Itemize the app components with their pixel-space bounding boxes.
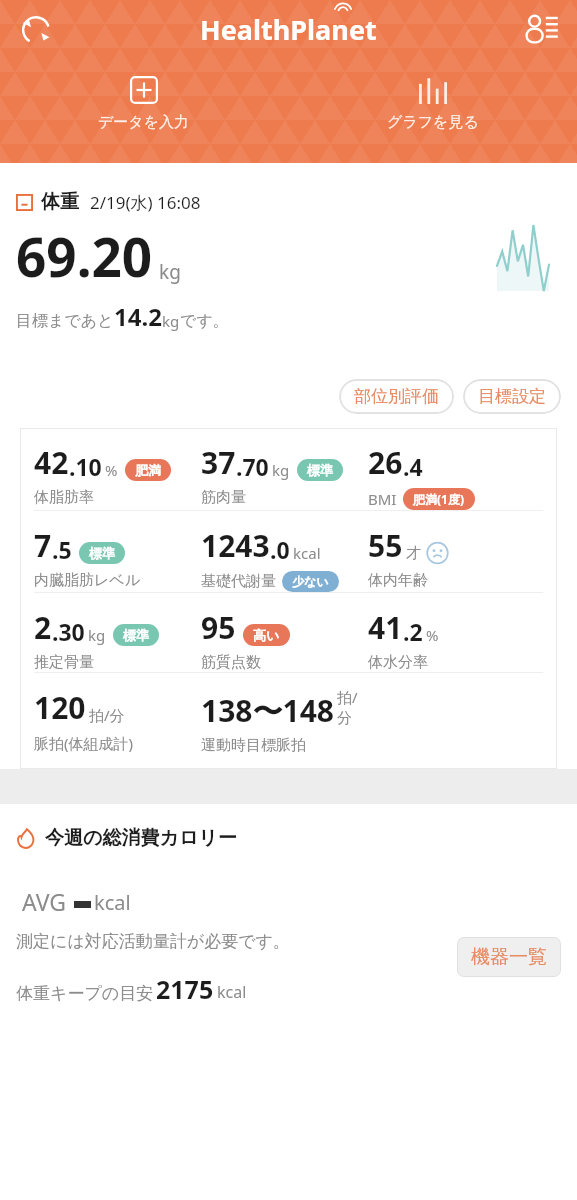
staticText: kg (272, 460, 290, 480)
staticText: グラフを見る (387, 113, 479, 132)
button[interactable]: 7 (34, 525, 141, 590)
button[interactable]: 120 (34, 687, 134, 753)
staticText: 目標設定 (478, 386, 546, 407)
button[interactable]: 26 (368, 442, 475, 510)
button[interactable]: 目標設定 (463, 379, 561, 414)
staticText: 37 (201, 442, 236, 483)
staticText: 標準 (123, 627, 149, 643)
button[interactable]: 機器一覧 (457, 937, 561, 977)
staticText: AVG (22, 886, 67, 917)
staticText: 拍/分 (337, 687, 368, 728)
staticText: 体脂肪率 (34, 488, 94, 507)
staticText: .70 (236, 451, 269, 482)
staticText: kg (159, 259, 181, 285)
staticText: 標準 (307, 462, 333, 478)
staticText: 体重 (41, 190, 79, 214)
button[interactable]: 138〜148 (201, 687, 368, 755)
staticText: kg (88, 625, 106, 645)
staticText: データを入力 (98, 113, 190, 132)
staticText: 少ない (292, 574, 329, 589)
staticText: .2 (403, 616, 423, 647)
button[interactable]: 95 (201, 607, 290, 672)
staticText: 運動時目標脈拍 (201, 736, 306, 755)
staticText: 体水分率 (368, 653, 428, 672)
button[interactable]: 42 (34, 442, 171, 507)
staticText: 機器一覧 (471, 945, 547, 969)
staticText: 目標まであと (16, 311, 114, 331)
staticText: 基礎代謝量 (201, 572, 276, 591)
staticText: 体重キープの目安 (16, 983, 154, 1004)
staticText: 標準 (89, 545, 115, 561)
staticText: BMI (368, 489, 397, 509)
staticText: kg (162, 311, 180, 331)
button[interactable]: 37 (201, 442, 343, 507)
button[interactable]: データを入力 (0, 72, 288, 136)
staticText: 部位別評価 (354, 386, 439, 407)
staticText: HealthPlan (200, 11, 349, 48)
staticText: 2175 (156, 972, 214, 1006)
staticText: 推定骨量 (34, 653, 94, 672)
staticText: % (426, 625, 439, 645)
staticText: 筋質点数 (201, 653, 261, 672)
staticText: .5 (52, 534, 72, 565)
staticText: kcal (293, 543, 321, 563)
staticText: kcal (217, 981, 247, 1003)
staticText: 2/19(水) 16:08 (90, 191, 201, 214)
staticText: kcal (94, 889, 131, 916)
button[interactable]: 部位別評価 (339, 379, 454, 414)
staticText: 高い (253, 627, 280, 643)
button[interactable]: Profile (517, 6, 565, 54)
staticText: et (349, 11, 377, 48)
staticText: 1243 (201, 525, 270, 566)
staticText: 55 (368, 525, 403, 566)
staticText: .10 (69, 451, 102, 482)
staticText: です。 (180, 311, 229, 331)
staticText: 120 (34, 687, 86, 728)
staticText: .0 (270, 534, 290, 565)
staticText: 26 (368, 442, 403, 483)
button[interactable]: 41 (368, 607, 439, 672)
staticText: 肥満(1度) (413, 491, 465, 507)
staticText: 体内年齢 (368, 571, 428, 590)
staticText: 95 (201, 607, 236, 648)
staticText: .30 (52, 616, 85, 647)
button[interactable]: 1243 (201, 525, 339, 592)
staticText: 脈拍(体組成計) (34, 733, 134, 753)
button[interactable]: Refresh (12, 6, 60, 54)
staticText: 測定には対応活動量計が必要です。 (16, 931, 290, 952)
staticText: 2 (34, 607, 52, 648)
staticText: 69.20 (16, 220, 153, 292)
button[interactable]: 2 (34, 607, 159, 672)
button[interactable]: グラフを見る (288, 72, 577, 136)
staticText: 今週の総消費カロリー (45, 826, 237, 850)
staticText: 肥満 (135, 462, 161, 478)
staticText: 7 (34, 525, 52, 566)
staticText: 42 (34, 442, 69, 483)
staticText: 才 (406, 544, 421, 563)
staticText: 筋肉量 (201, 488, 246, 507)
staticText: % (105, 460, 118, 480)
staticText: 138〜148 (201, 690, 334, 731)
button[interactable]: 55 (368, 525, 450, 590)
staticText: 内臓脂肪レベル (34, 571, 141, 590)
staticText: 拍/分 (89, 705, 125, 725)
staticText: 41 (368, 607, 403, 648)
staticText: 14.2 (114, 300, 162, 333)
staticText: .4 (403, 451, 423, 482)
